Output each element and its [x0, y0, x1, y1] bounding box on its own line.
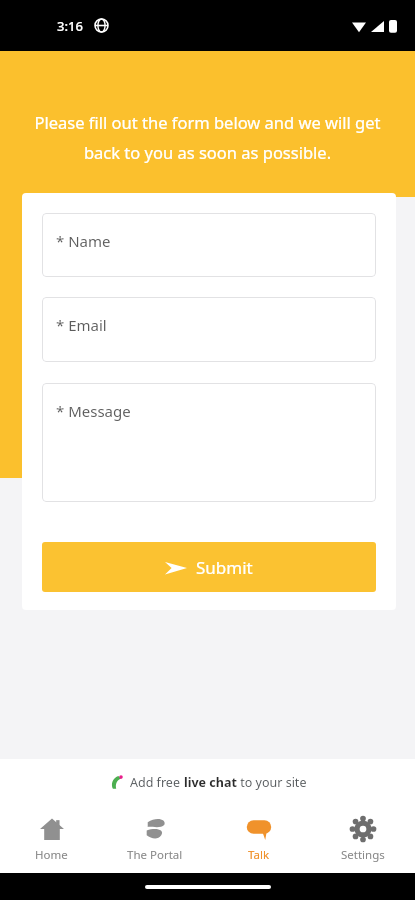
- button[interactable]: Add free: [0, 759, 415, 805]
- button[interactable]: Submit: [42, 542, 376, 592]
- button[interactable]: Settings: [311, 810, 415, 869]
- staticText: Submit: [196, 556, 253, 579]
- staticText: Talk: [248, 847, 270, 863]
- staticText: 3:16: [57, 17, 83, 35]
- staticText: Home: [35, 847, 68, 863]
- staticText: * Message: [56, 401, 131, 421]
- staticText: live chat: [184, 774, 237, 791]
- staticText: Please fill out the form below and we wi…: [30, 111, 385, 163]
- staticText: to your site: [237, 774, 307, 791]
- staticText: The Portal: [127, 847, 183, 863]
- staticText: Add free: [130, 774, 184, 791]
- staticText: Settings: [341, 847, 385, 863]
- button[interactable]: * Message: [42, 383, 376, 502]
- staticText: * Email: [56, 315, 107, 335]
- staticText: * Name: [56, 231, 111, 251]
- button[interactable]: Talk: [207, 810, 311, 869]
- button[interactable]: The Portal: [103, 810, 207, 869]
- button[interactable]: Home: [0, 810, 103, 869]
- button[interactable]: * Name: [42, 213, 376, 277]
- button[interactable]: * Email: [42, 297, 376, 362]
